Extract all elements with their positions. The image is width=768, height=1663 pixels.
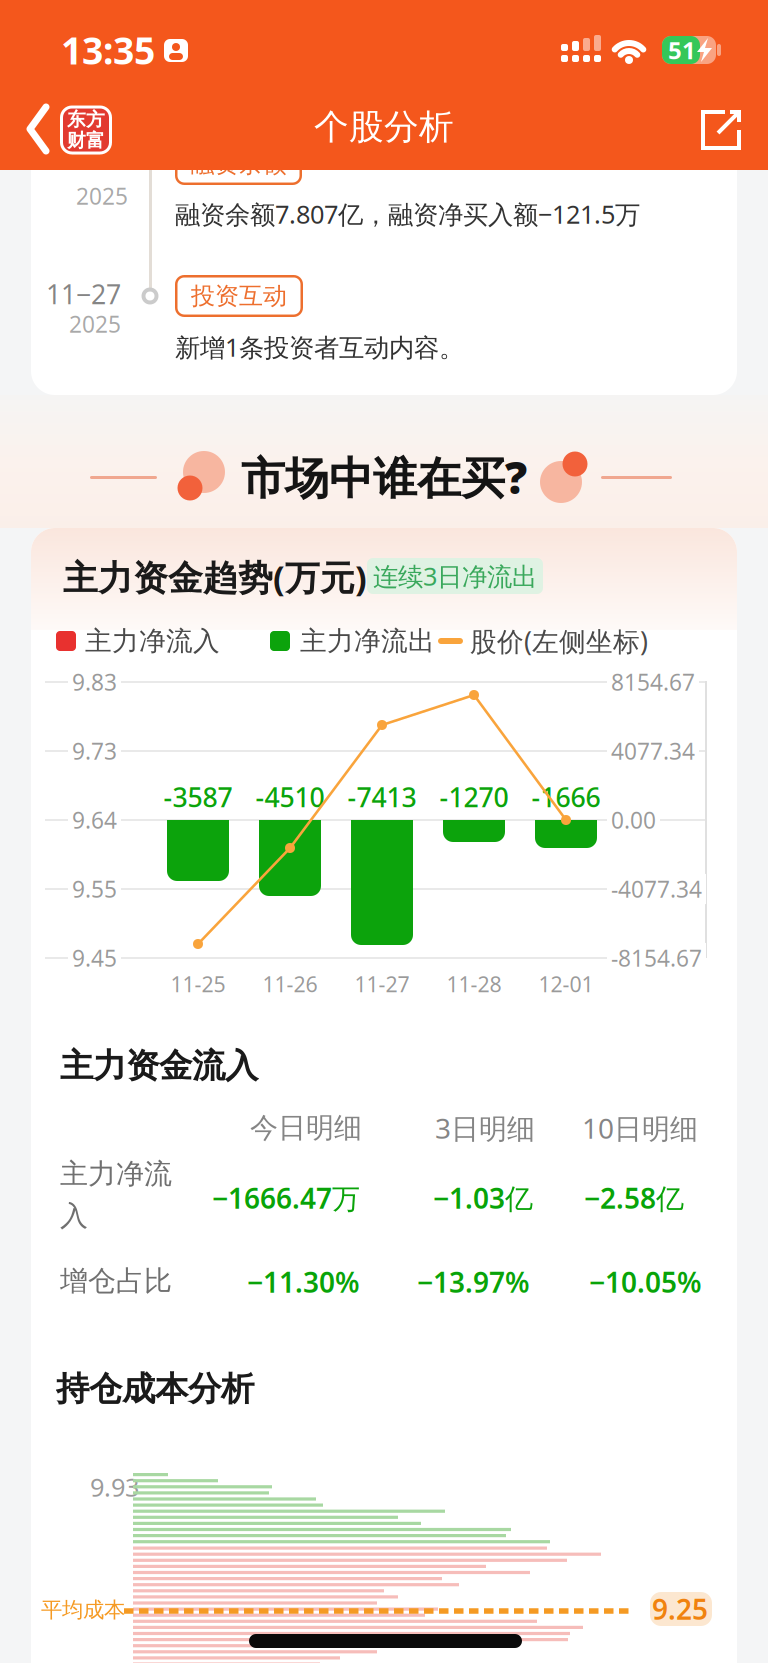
staticText: -1666 [531,779,600,815]
staticText: −11.30% [247,1263,360,1301]
staticText: 11-27 [354,970,409,998]
staticText: 2025 [69,309,121,339]
staticText: 4077.34 [611,736,695,766]
staticText: 今日明细 [250,1111,362,1145]
button[interactable]: 东方财富 [60,105,112,154]
staticText: 9.64 [72,805,117,835]
staticText: 0.00 [611,805,656,835]
staticText: 个股分析 [314,106,454,148]
staticText: −1666.47万 [212,1179,360,1217]
button[interactable]: Share [700,109,744,151]
staticText: 平均成本 [41,1597,125,1623]
staticText: -8154.67 [611,943,702,973]
staticText: 新增1条投资者互动内容。 [175,330,464,364]
staticText: 增仓占比 [60,1264,172,1298]
staticText: −10.05% [589,1263,702,1301]
staticText: 入 [60,1199,88,1233]
staticText: 11-26 [262,970,317,998]
staticText: 8154.67 [611,667,695,697]
staticText: -4510 [255,779,324,815]
staticText: 主力净流 [60,1157,172,1191]
staticText: 9.45 [72,943,117,973]
staticText: 12-01 [538,970,593,998]
button[interactable]: Back [25,104,51,154]
staticText: −1.03亿 [433,1179,533,1217]
staticText: 东方 [67,108,105,131]
staticText: −13.97% [417,1263,530,1301]
staticText: 市场中谁在买? [241,448,527,506]
staticText: 11-28 [446,970,501,998]
staticText: 10日明细 [582,1109,698,1147]
staticText: 11−27 [46,276,121,312]
staticText: 持仓成本分析 [56,1368,254,1409]
staticText: 9.55 [72,874,117,904]
staticText: 融资余额7.807亿，融资净买入额−121.5万 [175,197,640,231]
button[interactable]: 投资互动 [175,275,303,317]
staticText: 9.73 [72,736,117,766]
staticText: 9.93 [90,1470,139,1504]
staticText: 连续3日净流出 [373,559,537,593]
staticText: -1270 [439,779,508,815]
staticText: 3日明细 [435,1109,535,1147]
staticText: 主力资金流入 [60,1045,258,1086]
staticText: 财富 [67,129,105,152]
button[interactable]: 融资余额 [175,143,302,185]
staticText: 主力净流入 [85,625,220,657]
staticText: 主力净流出 [300,625,435,657]
staticText: 13:35 [61,25,155,75]
staticText: 主力资金趋势(万元) [63,554,367,600]
staticText: 股价(左侧坐标) [470,623,648,659]
staticText: 51 [668,34,696,66]
staticText: 2025 [76,181,128,211]
staticText: -7413 [347,779,416,815]
staticText: 投资互动 [191,281,287,311]
staticText: 融资余额 [190,149,286,179]
staticText: 11-25 [170,970,225,998]
staticText: 9.25 [652,1590,708,1628]
staticText: -3587 [163,779,232,815]
staticText: −2.58亿 [584,1179,684,1217]
staticText: 9.83 [72,667,117,697]
staticText: -4077.34 [611,874,702,904]
